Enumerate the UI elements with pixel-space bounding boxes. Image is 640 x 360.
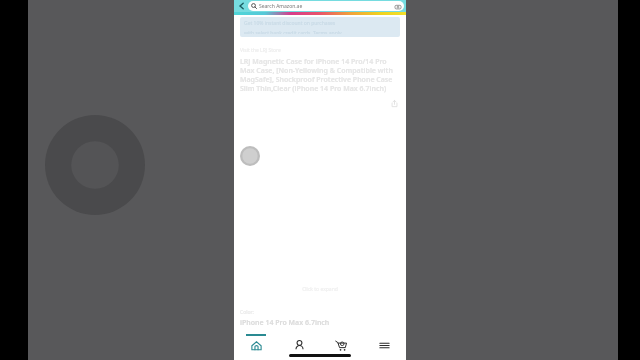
button[interactable]: Back <box>236 0 248 12</box>
staticText: Visit the LRJ Store <box>240 47 281 54</box>
button[interactable]: Click to expand <box>302 286 338 293</box>
staticText: Search Amazon.ae <box>259 3 303 10</box>
button[interactable]: Search Amazon.ae <box>248 1 404 11</box>
button[interactable]: Menu <box>364 334 404 360</box>
staticText: Get 10% instant discount on purchases <box>244 20 336 27</box>
staticText: with select bank credit cards. Terms app… <box>244 30 342 34</box>
staticText: LRJ Magnetic Case for iPhone 14 Pro/14 P… <box>240 57 400 93</box>
button[interactable]: Share <box>388 97 400 109</box>
staticText: iPhone 14 Pro Max 6.7inch <box>240 318 330 328</box>
staticText: Color: <box>240 309 254 316</box>
button[interactable]: Get 10% instant discount on purchases <box>240 17 400 37</box>
button[interactable]: Scan with camera <box>394 3 401 10</box>
button[interactable]: Account <box>279 334 319 360</box>
button[interactable]: Home <box>236 334 276 360</box>
button[interactable]: Cart <box>321 334 361 360</box>
